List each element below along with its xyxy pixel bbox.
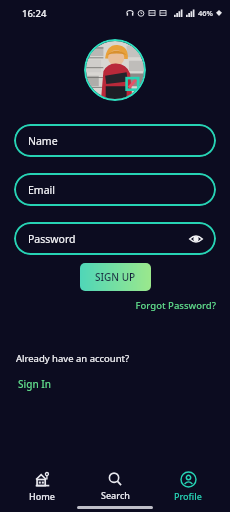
staticText: Profile: [174, 490, 202, 502]
button[interactable]: Sign In: [18, 377, 52, 391]
staticText: Search: [101, 489, 130, 501]
staticText: Name: [28, 134, 58, 148]
button[interactable]: Search: [84, 470, 146, 502]
button[interactable]: Forgot Password?: [135, 299, 216, 312]
staticText: SIGN UP: [95, 270, 136, 284]
button[interactable]: Password: [14, 222, 216, 255]
staticText: Home: [29, 490, 55, 502]
button[interactable]: Show password: [188, 231, 204, 247]
button[interactable]: Home: [11, 470, 73, 503]
button[interactable]: Email: [14, 173, 216, 206]
staticText: Sign In: [18, 377, 52, 391]
staticText: Forgot Password?: [135, 299, 216, 312]
button[interactable]: Name: [14, 124, 216, 157]
staticText: Already have an account?: [16, 352, 130, 365]
staticText: Password: [28, 232, 76, 246]
staticText: 16:24: [22, 7, 47, 20]
button[interactable]: Profile picture: [84, 39, 146, 101]
staticText: 46%: [198, 8, 213, 18]
button[interactable]: Profile: [157, 470, 219, 503]
button[interactable]: SIGN UP: [80, 263, 151, 291]
staticText: Email: [28, 183, 55, 197]
